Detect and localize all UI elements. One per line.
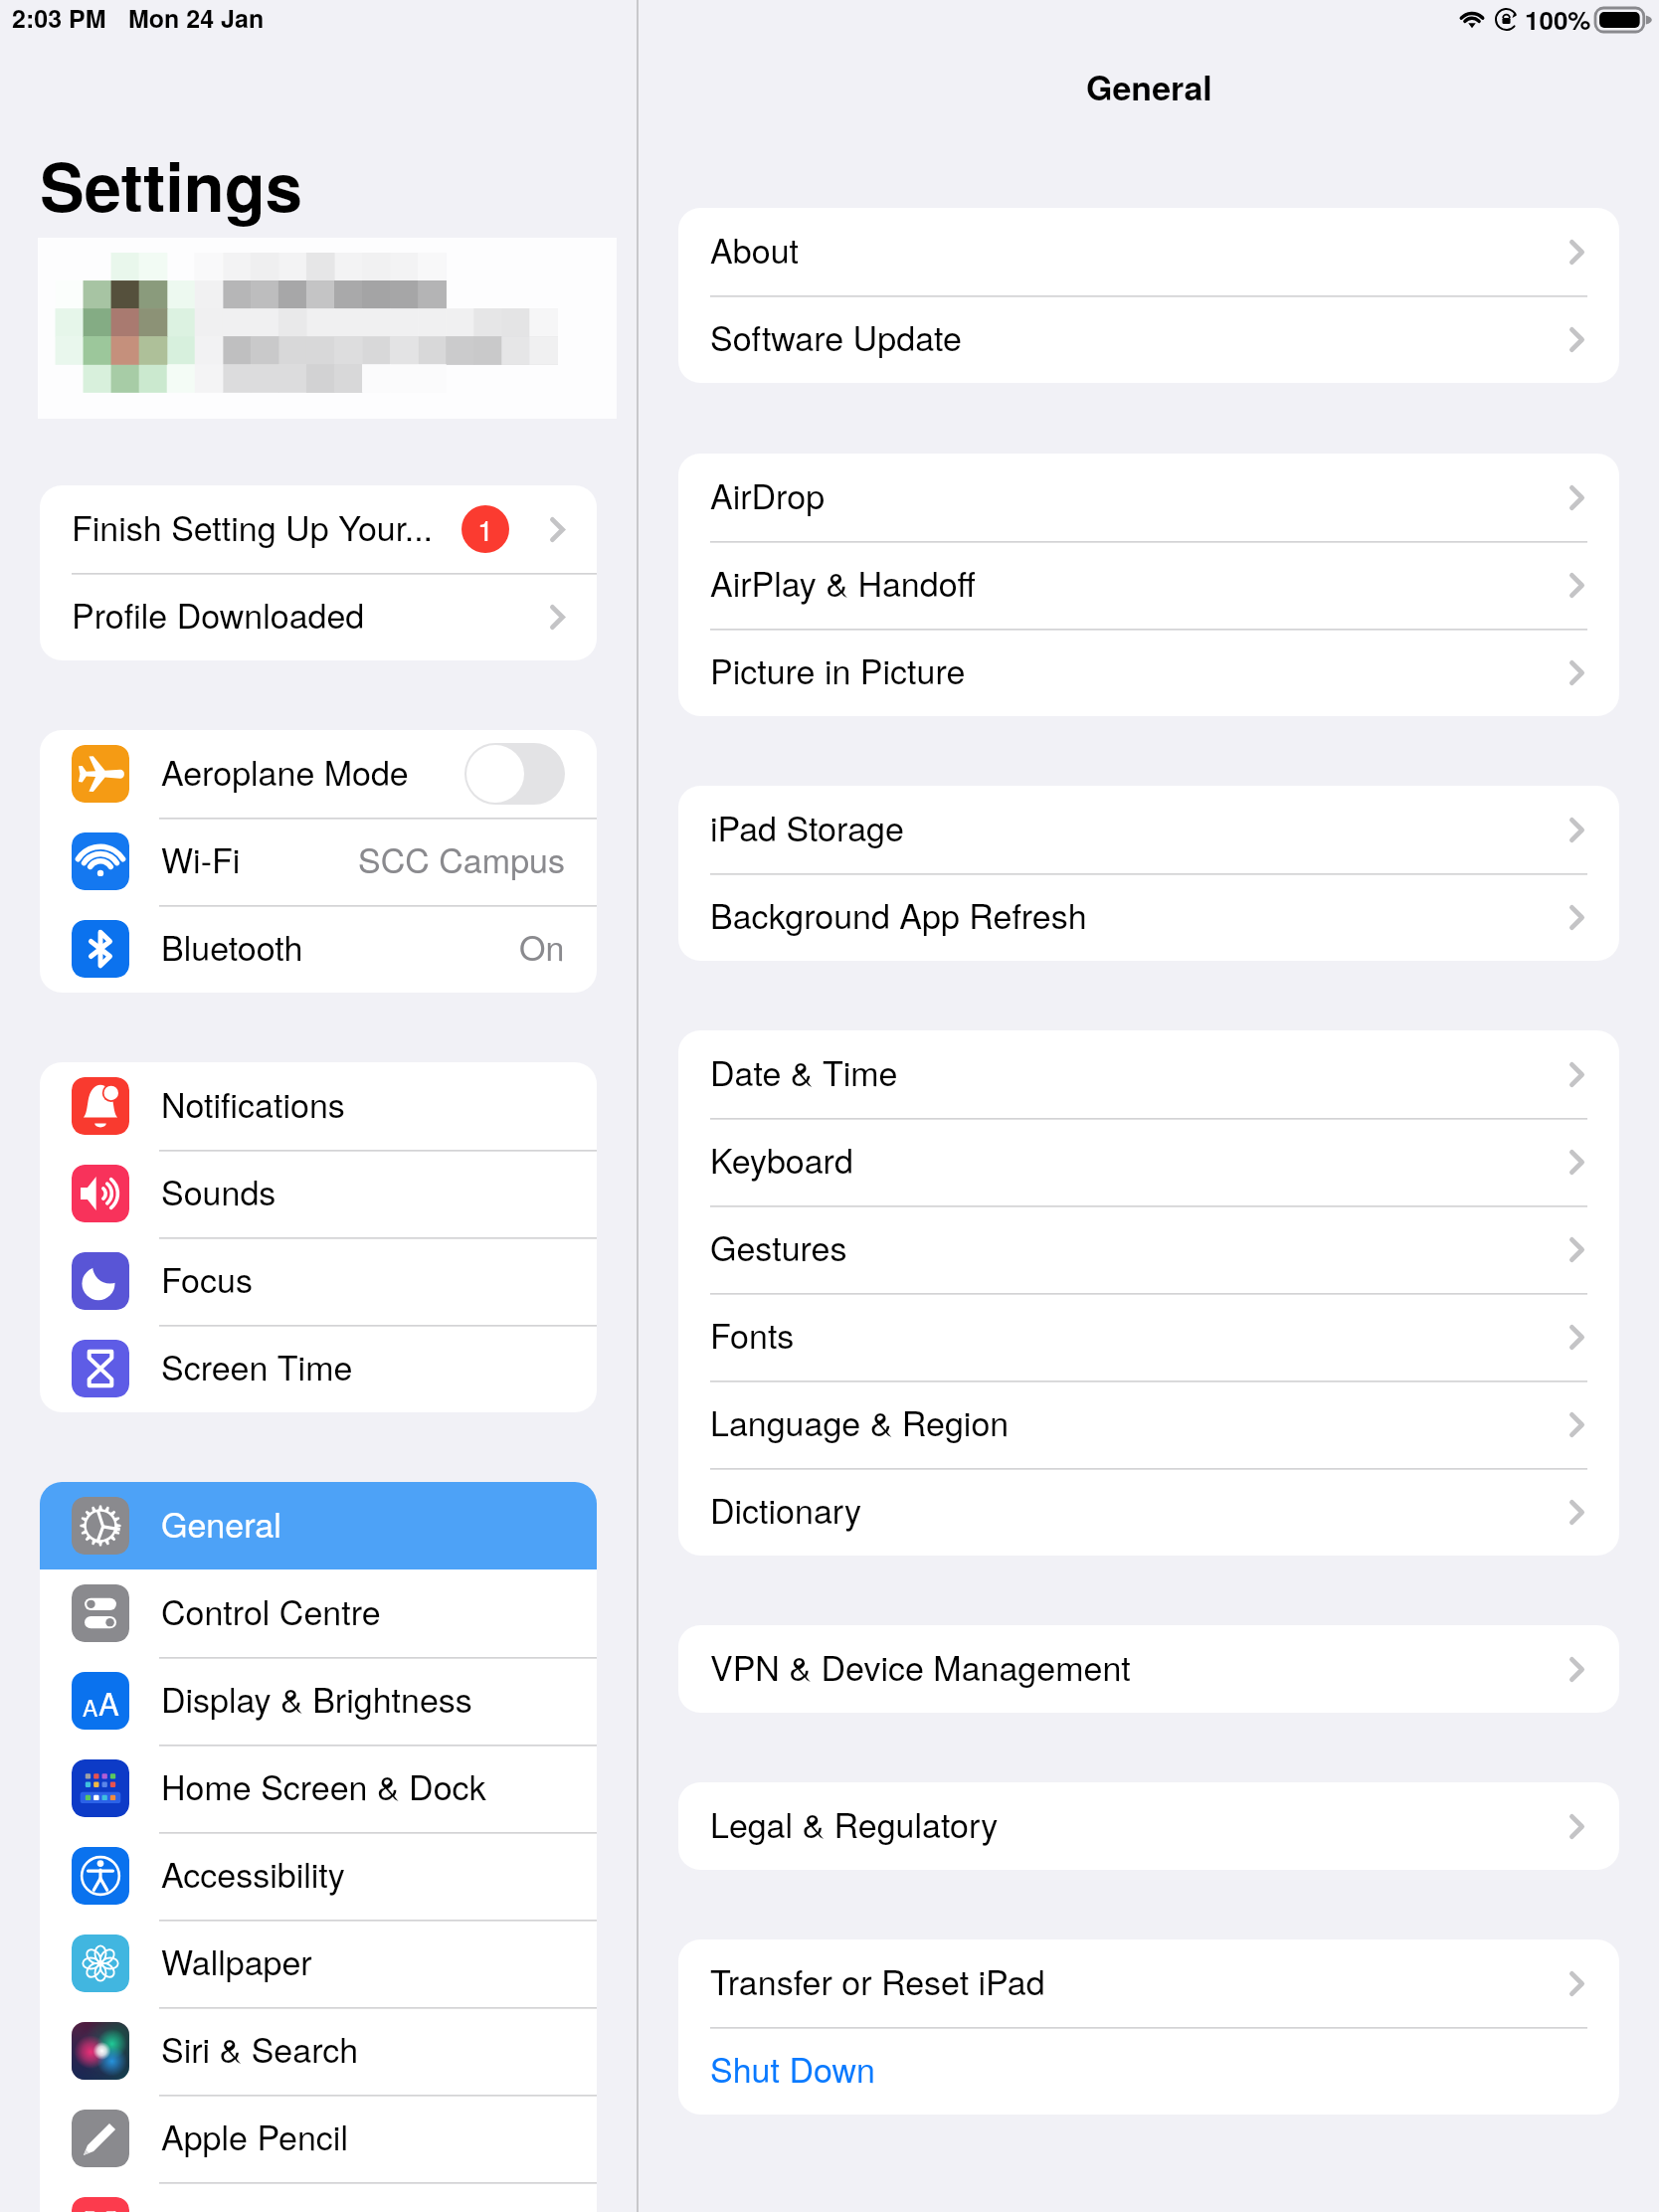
button[interactable]: Notifications: [40, 1062, 597, 1150]
staticText: General: [1086, 63, 1212, 111]
button[interactable]: Wi-Fi: [40, 818, 597, 905]
button[interactable]: Shut Down: [678, 2027, 1619, 2115]
staticText: Dictionary: [710, 1485, 861, 1534]
button[interactable]: Profile Downloaded: [40, 573, 597, 660]
button[interactable]: Aeroplane Mode toggle: [464, 743, 565, 805]
staticText: Wi-Fi: [161, 834, 241, 883]
button[interactable]: Legal & Regulatory: [678, 1782, 1619, 1870]
button[interactable]: Date & Time: [678, 1030, 1619, 1118]
staticText: About: [710, 225, 800, 274]
staticText: Apple Pencil: [161, 2112, 348, 2160]
button[interactable]: Screen Time: [40, 1325, 597, 1412]
staticText: 100%: [1525, 1, 1591, 38]
button[interactable]: Fonts: [678, 1293, 1619, 1381]
button[interactable]: Home Screen & Dock: [40, 1745, 597, 1832]
button[interactable]: VPN & Device Management: [678, 1625, 1619, 1713]
staticText: Picture in Picture: [710, 645, 966, 694]
button[interactable]: Focus: [40, 1237, 597, 1325]
other: Wi-Fi: [1458, 9, 1486, 28]
button[interactable]: Aeroplane Mode: [40, 730, 597, 818]
button[interactable]: Software Update: [678, 295, 1619, 383]
staticText: Profile Downloaded: [72, 590, 365, 639]
button[interactable]: Wallpaper: [40, 1920, 597, 2007]
other: Rotation lock: [1495, 8, 1518, 31]
staticText: Keyboard: [710, 1135, 853, 1184]
staticText: AirDrop: [710, 470, 826, 519]
button[interactable]: Control Centre: [40, 1569, 597, 1657]
button[interactable]: Picture in Picture: [678, 629, 1619, 716]
button[interactable]: Language & Region: [678, 1381, 1619, 1468]
button[interactable]: Accessibility: [40, 1832, 597, 1920]
staticText: Aeroplane Mode: [161, 747, 409, 796]
staticText: AirPlay & Handoff: [710, 558, 976, 607]
staticText: Mon 24 Jan: [128, 0, 265, 36]
staticText: Gestures: [710, 1222, 847, 1271]
button[interactable]: Face ID & Passcode: [40, 2182, 597, 2212]
button[interactable]: AirPlay & Handoff: [678, 541, 1619, 629]
staticText: Siri & Search: [161, 2024, 359, 2073]
button[interactable]: Gestures: [678, 1205, 1619, 1293]
staticText: General: [161, 1499, 281, 1548]
staticText: Display & Brightness: [161, 1674, 472, 1723]
staticText: Focus: [161, 1254, 253, 1303]
staticText: Home Screen & Dock: [161, 1761, 486, 1810]
button[interactable]: Finish Setting Up Your...: [40, 485, 597, 573]
staticText: Fonts: [710, 1310, 795, 1359]
staticText: Settings: [40, 137, 302, 233]
button[interactable]: Siri & Search: [40, 2007, 597, 2095]
other: Battery 100%: [1595, 8, 1652, 32]
staticText: Transfer or Reset iPad: [710, 1956, 1045, 2005]
staticText: Finish Setting Up Your...: [72, 502, 434, 551]
button[interactable]: Keyboard: [678, 1118, 1619, 1205]
staticText: Software Update: [710, 312, 962, 361]
staticText: Background App Refresh: [710, 890, 1087, 939]
staticText: Bluetooth: [161, 922, 303, 971]
button[interactable]: Apple Pencil: [40, 2095, 597, 2182]
staticText: 1: [477, 508, 494, 550]
staticText: Legal & Regulatory: [710, 1799, 999, 1848]
button[interactable]: AirDrop: [678, 454, 1619, 541]
staticText: A: [83, 1691, 98, 1724]
staticText: Sounds: [161, 1167, 276, 1215]
staticText: Language & Region: [710, 1397, 1010, 1446]
staticText: 2:03 PM: [12, 0, 106, 36]
button[interactable]: Bluetooth: [40, 905, 597, 993]
button[interactable]: iPad Storage: [678, 786, 1619, 873]
staticText: Screen Time: [161, 1342, 353, 1390]
staticText: iPad Storage: [710, 803, 904, 851]
staticText: Date & Time: [710, 1047, 898, 1096]
staticText: VPN & Device Management: [710, 1642, 1131, 1691]
button[interactable]: Dictionary: [678, 1468, 1619, 1556]
staticText: Shut Down: [710, 2044, 875, 2093]
button[interactable]: General: [40, 1482, 597, 1569]
button[interactable]: Transfer or Reset iPad: [678, 1939, 1619, 2027]
button[interactable]: A: [40, 1657, 597, 1745]
staticText: A: [98, 1680, 119, 1724]
staticText: Wallpaper: [161, 1936, 312, 1985]
staticText: Accessibility: [161, 1849, 345, 1898]
button[interactable]: Background App Refresh: [678, 873, 1619, 961]
staticText: On: [519, 922, 565, 971]
staticText: Control Centre: [161, 1586, 381, 1635]
staticText: SCC Campus: [358, 834, 565, 883]
staticText: Notifications: [161, 1079, 345, 1128]
button[interactable]: About: [678, 208, 1619, 295]
button[interactable]: Sounds: [40, 1150, 597, 1237]
